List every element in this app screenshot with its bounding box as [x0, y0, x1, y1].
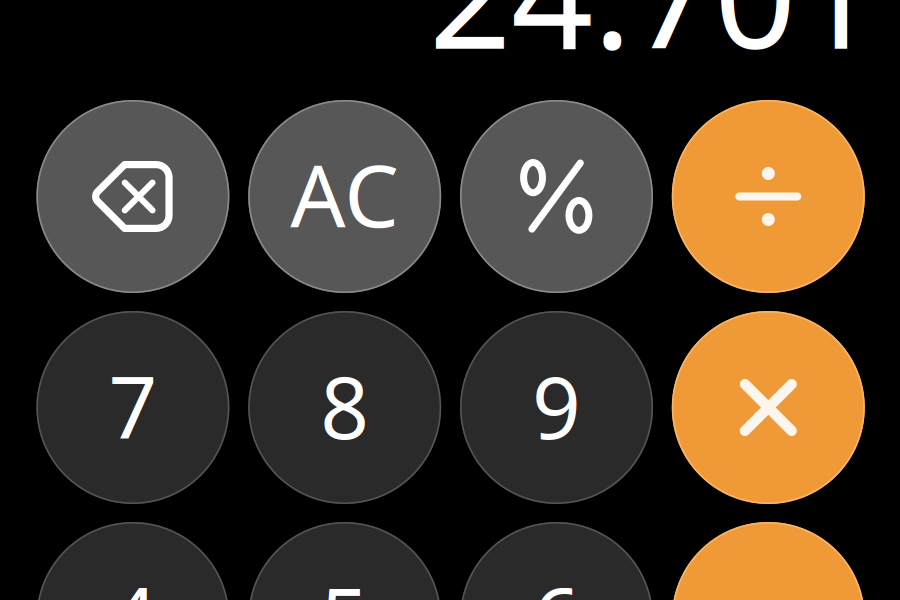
staticText: 6	[532, 560, 581, 600]
button[interactable]: Percent	[460, 100, 653, 293]
staticText: 9	[532, 349, 581, 463]
staticText: 8	[320, 349, 369, 463]
button[interactable]: 9	[460, 311, 653, 504]
button[interactable]: Divide	[672, 100, 865, 293]
staticText: 24.701	[429, 0, 878, 89]
staticText: 7	[108, 349, 157, 463]
button[interactable]: 8	[248, 311, 441, 504]
button[interactable]: 5	[248, 522, 441, 600]
button[interactable]: Delete	[36, 100, 229, 293]
button[interactable]: 7	[36, 311, 229, 504]
button[interactable]: 4	[36, 522, 229, 600]
button[interactable]: Multiply	[672, 311, 865, 504]
staticText: 4	[108, 560, 157, 600]
staticText: AC	[290, 136, 399, 251]
staticText: 5	[320, 560, 369, 600]
button[interactable]: AC	[248, 100, 441, 293]
button[interactable]: Subtract	[672, 522, 865, 600]
button[interactable]: 6	[460, 522, 653, 600]
